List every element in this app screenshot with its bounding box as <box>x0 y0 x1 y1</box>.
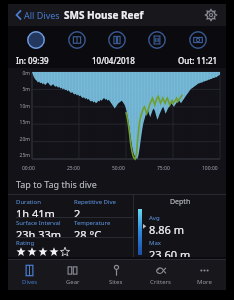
staticText: 5m <box>12 86 30 93</box>
button[interactable]: All Dives <box>14 9 61 21</box>
staticText: SMS House Reef <box>64 8 144 22</box>
staticText: 8.86 m <box>149 222 184 237</box>
button[interactable]: Profile <box>24 28 48 52</box>
staticText: More <box>197 278 212 286</box>
staticText: 75:00 <box>157 165 170 172</box>
button[interactable]: Temperature <box>74 218 133 237</box>
staticText: All Dives <box>24 9 60 21</box>
staticText: 100:00 <box>202 165 218 172</box>
staticText: Max <box>149 239 161 247</box>
staticText: 10m <box>12 103 30 110</box>
button[interactable]: Repetitive Dive <box>74 197 133 217</box>
staticText: Out: 11:21 <box>178 55 218 66</box>
staticText: 10/04/2018 <box>92 55 135 66</box>
staticText: Rating <box>16 239 35 247</box>
staticText: Avg <box>149 214 160 222</box>
staticText: 23.60 m <box>149 247 191 257</box>
staticText: Tap to Tag this dive <box>16 178 97 190</box>
button[interactable]: Sites <box>94 260 138 290</box>
button[interactable]: Settings <box>202 6 220 24</box>
button[interactable]: Dives <box>8 260 51 290</box>
staticText: Gear <box>66 278 80 286</box>
staticText: Critters <box>150 278 171 286</box>
button[interactable]: Critters <box>138 260 182 290</box>
staticText: Duration <box>16 198 41 206</box>
staticText: Surface Interval <box>16 219 61 227</box>
button[interactable]: Tap to Tag this dive <box>8 174 226 194</box>
staticText: Temperature <box>74 219 111 227</box>
staticText: 25m <box>12 152 30 159</box>
button[interactable]: Surface Interval <box>16 218 74 237</box>
staticText: Dives <box>22 278 38 286</box>
button[interactable]: Duration <box>16 197 74 217</box>
button[interactable]: Equipment <box>65 28 89 52</box>
button[interactable]: More <box>182 260 226 290</box>
staticText: 1h 41m <box>16 206 55 217</box>
staticText: 23h 33m <box>16 227 62 237</box>
staticText: 15m <box>12 119 30 126</box>
staticText: 28 °C <box>74 227 102 237</box>
staticText: Repetitive Dive <box>74 198 116 206</box>
staticText: Sites <box>109 278 123 286</box>
staticText: 2 <box>74 206 81 217</box>
staticText: Depth <box>170 197 191 207</box>
staticText: 20m <box>12 136 30 143</box>
staticText: 0m <box>12 70 30 77</box>
button[interactable]: Notes <box>145 28 169 52</box>
staticText: 00:00 <box>22 165 35 172</box>
staticText: In: 09:39 <box>16 55 49 66</box>
button[interactable]: Photos <box>186 28 210 52</box>
button[interactable]: Gear <box>51 260 94 290</box>
staticText: 25:00 <box>67 165 80 172</box>
button[interactable]: Tanks <box>105 28 129 52</box>
staticText: 50:00 <box>112 165 125 172</box>
button[interactable]: Rating 4 of 5 <box>16 247 71 257</box>
